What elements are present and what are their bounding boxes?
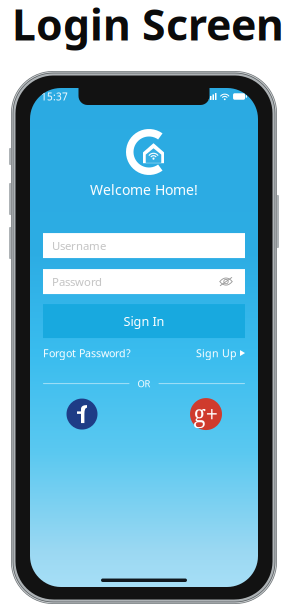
button[interactable]: Sign in with Facebook	[65, 397, 99, 431]
staticText: Username	[52, 238, 106, 253]
staticText: Sign In	[123, 312, 164, 330]
staticText: OR	[137, 377, 150, 390]
button[interactable]: Show password	[216, 272, 236, 292]
staticText: Forgot Password?	[43, 346, 131, 360]
staticText: Password	[52, 274, 102, 289]
button[interactable]: Sign in with Google Plus	[189, 397, 223, 431]
button[interactable]: Sign Up	[196, 346, 245, 360]
staticText: Welcome Home!	[90, 180, 198, 199]
staticText: g+	[193, 398, 218, 429]
button[interactable]: Sign In	[43, 304, 245, 338]
staticText: Login Screen	[12, 0, 284, 53]
staticText: Sign Up	[196, 346, 237, 360]
staticText: 15:37	[41, 90, 68, 103]
button[interactable]: Forgot Password?	[43, 346, 131, 360]
